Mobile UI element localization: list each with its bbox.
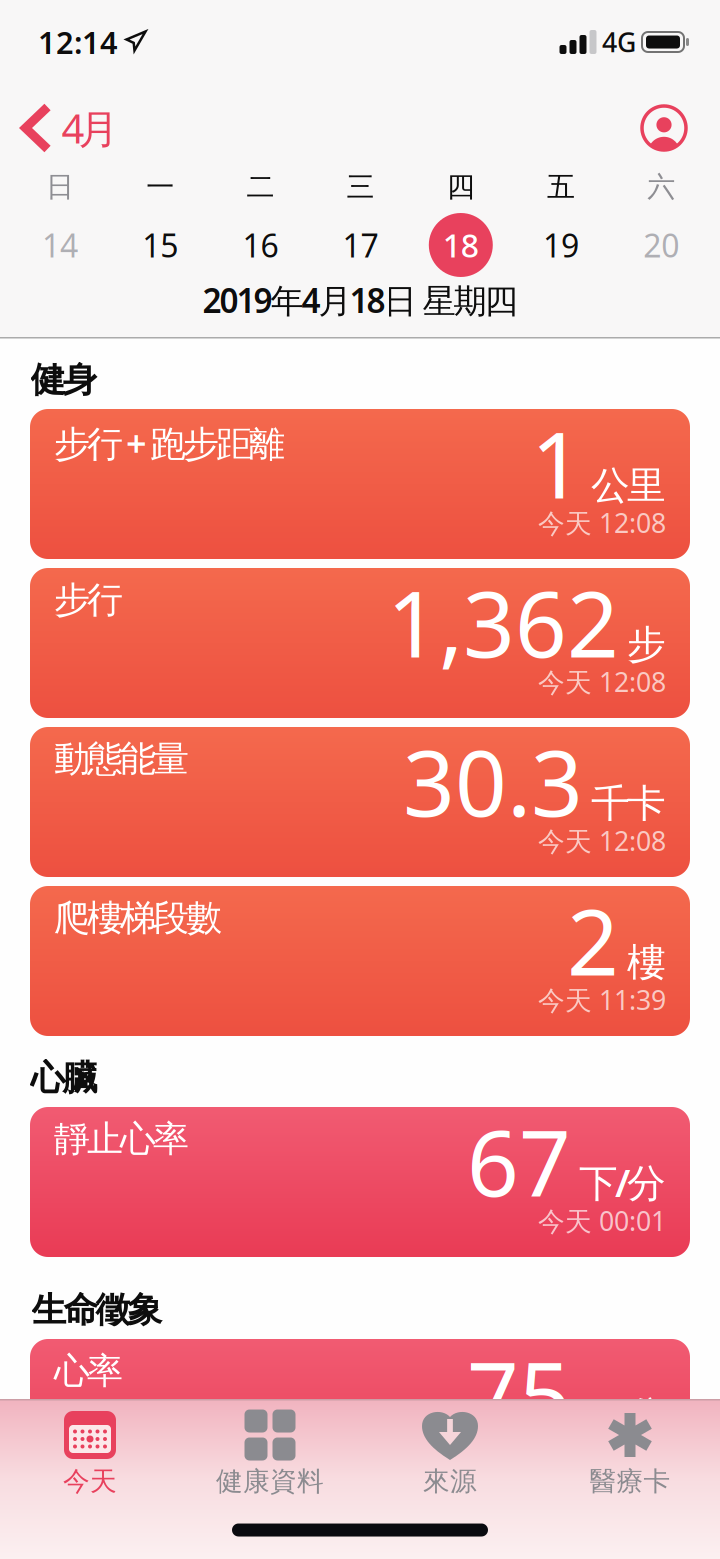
button[interactable]: 20	[629, 213, 693, 277]
staticText: 四	[447, 170, 475, 204]
button[interactable]: 個人檔案	[642, 106, 686, 150]
button[interactable]: 步行 + 跑步距離	[30, 409, 690, 559]
button[interactable]: 動態能量	[30, 727, 690, 877]
button[interactable]: 今天	[0, 1409, 180, 1498]
staticText: 步	[627, 621, 666, 668]
staticText: 今天 12:10	[538, 1435, 666, 1470]
staticText: 下/分	[579, 1388, 666, 1439]
button[interactable]: 15	[128, 213, 192, 277]
staticText: 今天 00:01	[538, 1203, 666, 1238]
staticText: 靜止心率	[54, 1117, 189, 1161]
button[interactable]: 心率	[30, 1339, 690, 1489]
staticText: 17	[343, 224, 379, 266]
staticText: 三	[347, 170, 375, 204]
staticText: 今天 12:08	[538, 505, 666, 540]
button[interactable]: 健康資料	[180, 1409, 360, 1498]
staticText: 15	[142, 224, 178, 266]
staticText: 步行 + 跑步距離	[54, 419, 285, 467]
staticText: 心臟	[30, 1057, 97, 1099]
button[interactable]: 來源	[360, 1409, 540, 1498]
button[interactable]: 14	[28, 213, 92, 277]
staticText: 30.3	[403, 721, 583, 841]
staticText: 4G	[602, 24, 636, 60]
staticText: 今天 12:08	[538, 823, 666, 858]
staticText: 五	[547, 170, 575, 204]
button[interactable]: 18	[429, 213, 493, 277]
staticText: 醫療卡	[589, 1465, 670, 1498]
button[interactable]: 17	[329, 213, 393, 277]
staticText: 爬樓梯段數	[54, 896, 222, 940]
staticText: 67	[467, 1101, 571, 1221]
staticText: 19	[543, 224, 579, 266]
staticText: 一	[146, 170, 174, 204]
staticText: 20	[643, 224, 679, 266]
staticText: 步行	[54, 578, 123, 622]
staticText: 今天 11:39	[538, 982, 666, 1017]
staticText: 16	[242, 224, 278, 266]
staticText: 4月	[61, 101, 118, 154]
staticText: 12:14	[38, 22, 118, 62]
staticText: 動態能量	[54, 737, 189, 781]
staticText: 六	[647, 170, 675, 204]
button[interactable]: 醫療卡	[540, 1409, 720, 1498]
staticText: 1,362	[387, 562, 619, 682]
staticText: 心率	[54, 1349, 123, 1393]
staticText: 樓	[627, 939, 666, 986]
staticText: 2	[567, 880, 619, 1000]
staticText: 日	[46, 170, 74, 204]
staticText: 今天	[63, 1465, 117, 1498]
staticText: 75	[467, 1333, 571, 1453]
button[interactable]: 19	[529, 213, 593, 277]
staticText: 生命徵象	[31, 1289, 162, 1331]
staticText: 14	[42, 224, 78, 266]
button[interactable]: 爬樓梯段數	[30, 886, 690, 1036]
staticText: 健身	[30, 359, 97, 401]
button[interactable]: 16	[228, 213, 292, 277]
staticText: 下/分	[579, 1156, 666, 1207]
staticText: 1	[531, 403, 583, 523]
button[interactable]: 靜止心率	[30, 1107, 690, 1257]
button[interactable]: 步行	[30, 568, 690, 718]
button[interactable]: 返回 4月	[25, 101, 118, 154]
staticText: 2019年4月18日 星期四	[202, 278, 517, 322]
staticText: 千卡	[591, 780, 666, 827]
staticText: 公里	[591, 462, 666, 509]
staticText: 18	[443, 224, 479, 266]
staticText: 健康資料	[216, 1465, 324, 1498]
staticText: 今天 12:08	[538, 664, 666, 699]
staticText: 來源	[423, 1465, 477, 1498]
staticText: 二	[246, 170, 274, 204]
